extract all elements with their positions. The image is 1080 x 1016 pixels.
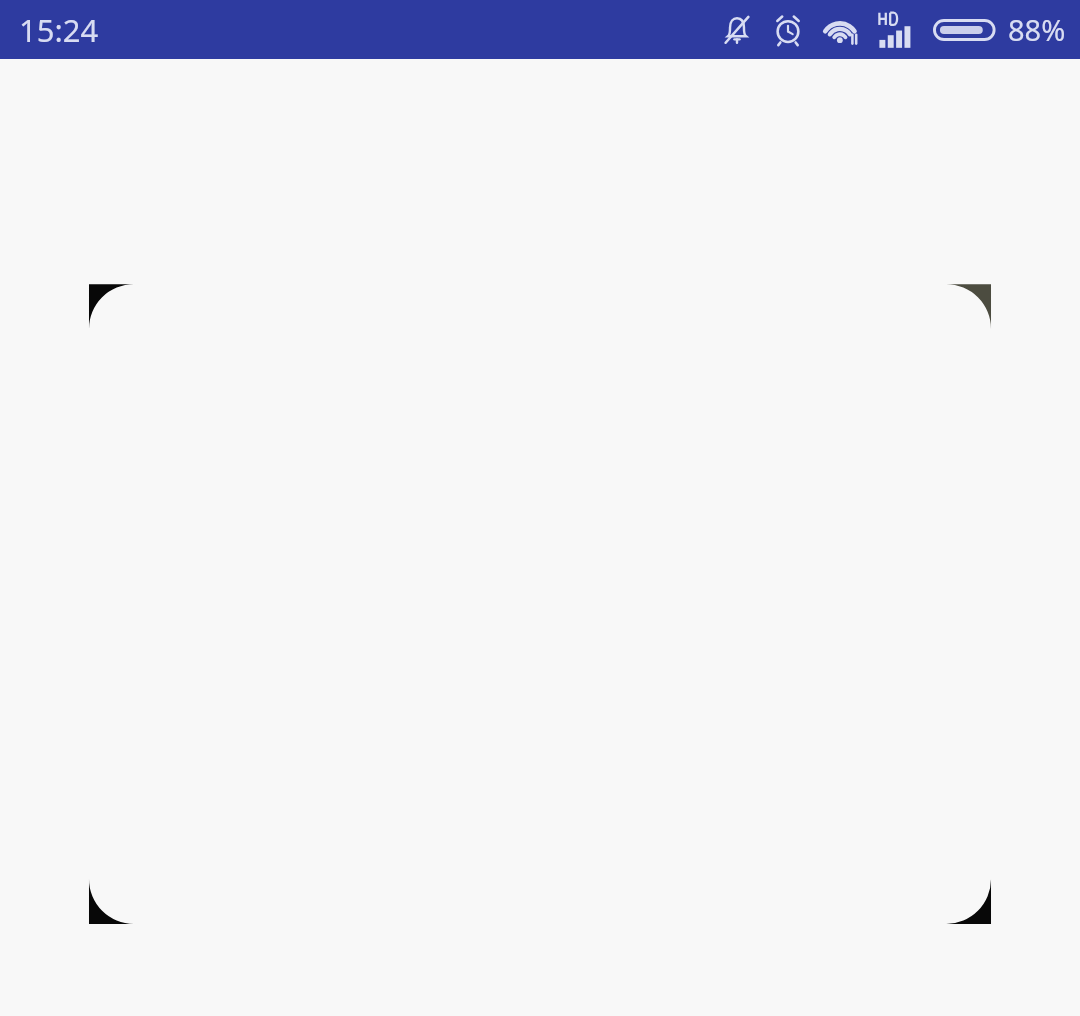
staticText: 15:24 [19,9,99,51]
staticText: 88% [1008,10,1066,49]
button[interactable]: Scan area viewfinder [0,59,1080,1016]
